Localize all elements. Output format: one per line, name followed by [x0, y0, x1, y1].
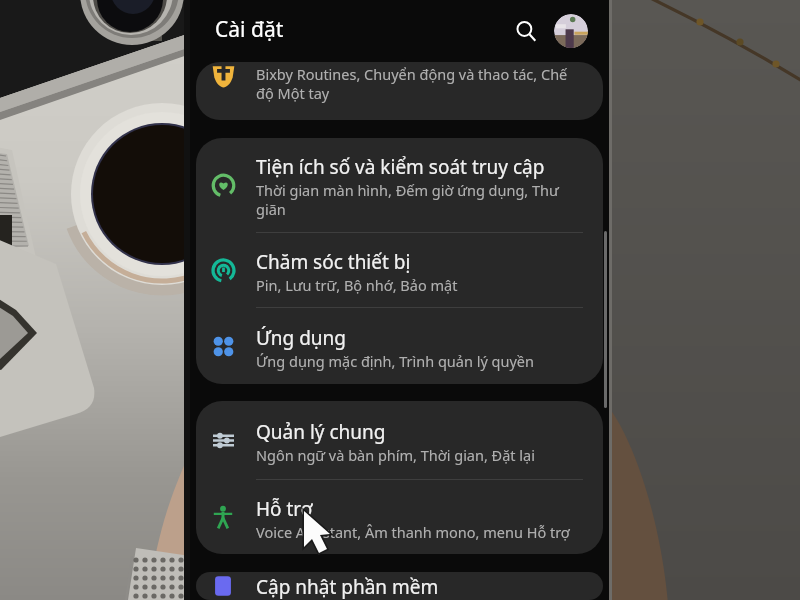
staticText: Ứng dụng mặc định, Trình quản lý quyền: [256, 351, 534, 371]
staticText: Ứng dụng: [256, 325, 347, 351]
staticText: Thời gian màn hình, Đếm giờ ứng dụng, Th…: [256, 180, 574, 220]
button[interactable]: Bixby Routines, Chuyển động và thao tác,…: [196, 62, 603, 120]
button[interactable]: Search: [509, 14, 543, 48]
button[interactable]: Cập nhật phần mềm: [196, 572, 603, 600]
staticText: Tiện ích số và kiểm soát truy cập: [256, 154, 545, 180]
staticText: Cài đặt: [215, 15, 284, 44]
staticText: Bixby Routines, Chuyển động và thao tác,…: [256, 64, 574, 104]
staticText: Chăm sóc thiết bị: [256, 249, 411, 275]
staticText: Hỗ trợ: [256, 496, 313, 522]
button[interactable]: Account profile: [554, 14, 588, 48]
staticText: Voice Assistant, Âm thanh mono, menu Hỗ …: [256, 522, 570, 542]
staticText: Pin, Lưu trữ, Bộ nhớ, Bảo mật: [256, 275, 458, 295]
button[interactable]: Ứng dụng: [196, 308, 603, 384]
staticText: Cập nhật phần mềm: [256, 574, 439, 600]
staticText: Ngôn ngữ và bàn phím, Thời gian, Đặt lại: [256, 445, 535, 465]
button[interactable]: Chăm sóc thiết bị: [196, 233, 603, 307]
button[interactable]: Hỗ trợ: [196, 480, 603, 554]
button[interactable]: Quản lý chung: [196, 401, 603, 479]
staticText: Quản lý chung: [256, 419, 386, 445]
button[interactable]: Tiện ích số và kiểm soát truy cập: [196, 138, 603, 232]
